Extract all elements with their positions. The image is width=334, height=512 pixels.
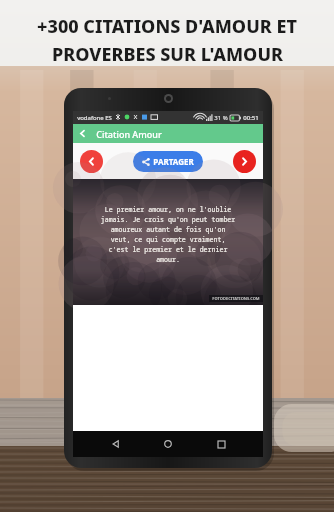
button[interactable]: Home (158, 434, 178, 454)
button[interactable]: Next (233, 150, 256, 173)
button[interactable]: Back (106, 434, 126, 454)
button[interactable]: PARTAGER (133, 151, 203, 172)
button[interactable]: Recents (211, 434, 231, 454)
staticText: Citation Amour (96, 128, 162, 140)
staticText: +300 CITATIONS D'AMOUR ET (37, 14, 297, 39)
staticText: 31 % (214, 114, 228, 122)
staticText: FOTODECITATIONS.COM (212, 296, 260, 301)
button[interactable]: Back (73, 124, 92, 143)
staticText: Le premier amour, on ne l'oublie jamais.… (73, 205, 263, 264)
staticText: PROVERBES SUR L'AMOUR (52, 42, 283, 67)
staticText: vodafone ES (77, 114, 112, 122)
staticText: PARTAGER (153, 156, 194, 167)
staticText: 00:51 (243, 114, 259, 122)
button[interactable]: Le premier amour, on ne l'oublie jamais.… (73, 179, 263, 305)
button[interactable]: Previous (80, 150, 103, 173)
